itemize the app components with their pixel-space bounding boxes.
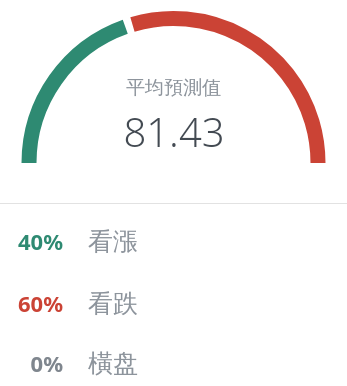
button[interactable]: 40% xyxy=(0,226,347,256)
staticText: 橫盘 xyxy=(88,348,138,378)
staticText: 81.43 xyxy=(123,104,225,158)
staticText: 40% xyxy=(17,226,63,256)
staticText: 0% xyxy=(30,348,63,378)
staticText: 平均預測值 xyxy=(126,76,221,100)
staticText: 看漲 xyxy=(88,226,138,256)
button[interactable]: 平均預測值儀表 xyxy=(0,0,347,203)
other: 平均預測值儀表 xyxy=(0,0,347,203)
button[interactable]: 60% xyxy=(0,288,347,318)
button[interactable]: 0% xyxy=(0,348,347,378)
staticText: 看跌 xyxy=(88,288,138,318)
staticText: 60% xyxy=(17,288,63,318)
